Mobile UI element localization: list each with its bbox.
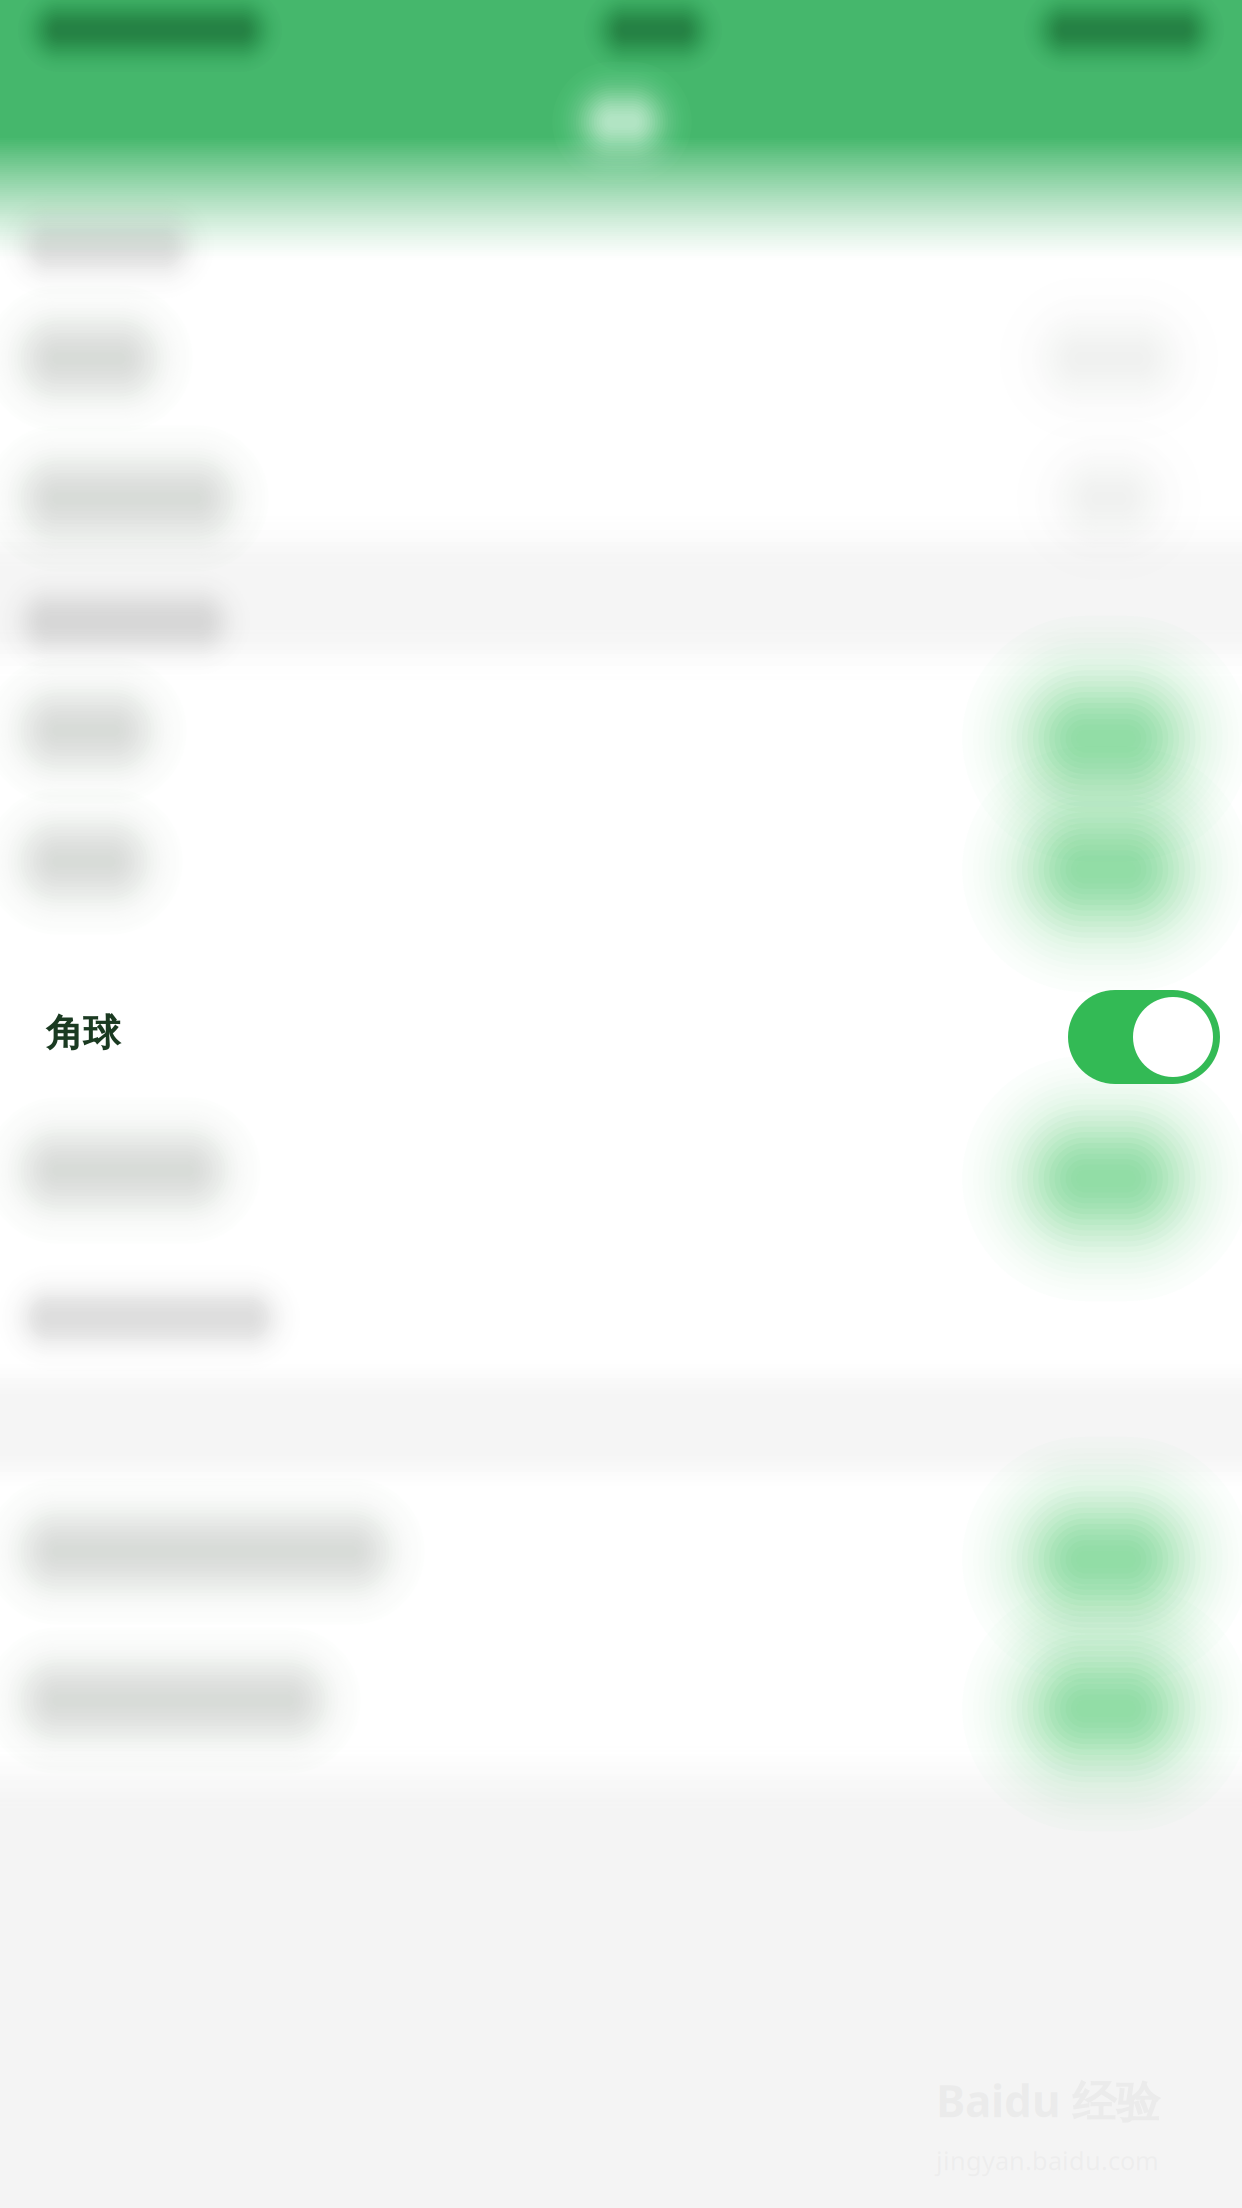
staticText: 角球 — [46, 1010, 120, 1056]
staticText: Baidu 经验 — [936, 2071, 1160, 2130]
button[interactable]: 角球 — [0, 963, 1242, 1103]
